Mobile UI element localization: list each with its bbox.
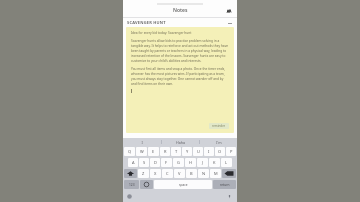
staticText: 123: [129, 183, 135, 187]
staticText: O: [218, 149, 222, 154]
staticText: Haha: [176, 140, 185, 145]
staticText: return: [220, 183, 230, 187]
staticText: A: [132, 160, 135, 165]
staticText: space: [179, 183, 188, 187]
button[interactable]: N: [198, 169, 209, 178]
button[interactable]: V: [174, 169, 185, 178]
button[interactable]: O: [215, 147, 225, 156]
staticText: Idea for every kid today: Scavenger hunt: [131, 31, 192, 35]
button[interactable]: J: [197, 158, 208, 167]
staticText: Z: [142, 171, 145, 176]
staticText: SCAVENGER HUNT: [127, 20, 166, 25]
button[interactable]: Dictation: [227, 194, 232, 199]
staticText: K: [213, 160, 216, 165]
staticText: M: [214, 171, 218, 176]
button[interactable]: M: [210, 169, 221, 178]
button[interactable]: K: [209, 158, 220, 167]
button[interactable]: Idea for every kid today: Scavenger hunt: [126, 27, 234, 133]
staticText: reminder: [212, 124, 226, 128]
staticText: J: [202, 160, 204, 165]
staticText: B: [190, 171, 193, 176]
button[interactable]: P: [226, 147, 236, 156]
button[interactable]: reminder: [209, 123, 229, 129]
button[interactable]: Switch keyboard: [127, 194, 132, 199]
button[interactable]: D: [150, 158, 160, 167]
button[interactable]: Y: [182, 147, 192, 156]
button[interactable]: Z: [138, 169, 149, 178]
button[interactable]: Emoji: [140, 180, 153, 189]
staticText: N: [202, 171, 206, 176]
staticText: E: [152, 149, 155, 154]
staticText: Q: [128, 149, 132, 154]
button[interactable]: I: [123, 138, 161, 146]
staticText: L: [225, 160, 228, 165]
staticText: You must first all items and snap a phot…: [131, 67, 229, 86]
staticText: Notes: [173, 7, 188, 14]
button[interactable]: E: [148, 147, 159, 156]
staticText: W: [140, 149, 144, 154]
staticText: P: [230, 149, 233, 154]
button[interactable]: T: [171, 147, 181, 156]
button[interactable]: G: [173, 158, 184, 167]
button[interactable]: L: [221, 158, 232, 167]
button[interactable]: More options: [227, 20, 233, 26]
button[interactable]: W: [136, 147, 147, 156]
button[interactable]: B: [186, 169, 197, 178]
button[interactable]: space: [154, 180, 212, 189]
staticText: I: [141, 140, 143, 145]
button[interactable]: I'm: [200, 138, 237, 146]
button[interactable]: I: [204, 147, 214, 156]
button[interactable]: Shift: [124, 169, 137, 178]
staticText: S: [143, 160, 146, 165]
staticText: F: [165, 160, 168, 165]
staticText: I: [208, 149, 210, 154]
staticText: I'm: [216, 140, 222, 145]
button[interactable]: return: [213, 180, 236, 189]
staticText: Scavenger hunts allow kids to practice p…: [131, 39, 229, 63]
button[interactable]: C: [162, 169, 173, 178]
button[interactable]: R: [160, 147, 170, 156]
staticText: U: [197, 149, 200, 154]
button[interactable]: A: [128, 158, 138, 167]
button[interactable]: U: [193, 147, 203, 156]
button[interactable]: S: [139, 158, 149, 167]
staticText: H: [189, 160, 192, 165]
staticText: R: [164, 149, 167, 154]
staticText: C: [166, 171, 169, 176]
button[interactable]: Compose note: [225, 7, 233, 15]
button[interactable]: X: [150, 169, 161, 178]
button[interactable]: H: [185, 158, 196, 167]
staticText: D: [154, 160, 157, 165]
staticText: V: [178, 171, 181, 176]
button[interactable]: 123: [124, 180, 139, 189]
staticText: G: [177, 160, 180, 165]
button[interactable]: Backspace: [222, 169, 236, 178]
button[interactable]: Q: [124, 147, 135, 156]
staticText: Y: [186, 149, 189, 154]
button[interactable]: F: [161, 158, 172, 167]
staticText: X: [154, 171, 157, 176]
staticText: T: [175, 149, 178, 154]
button[interactable]: Haha: [162, 138, 199, 146]
